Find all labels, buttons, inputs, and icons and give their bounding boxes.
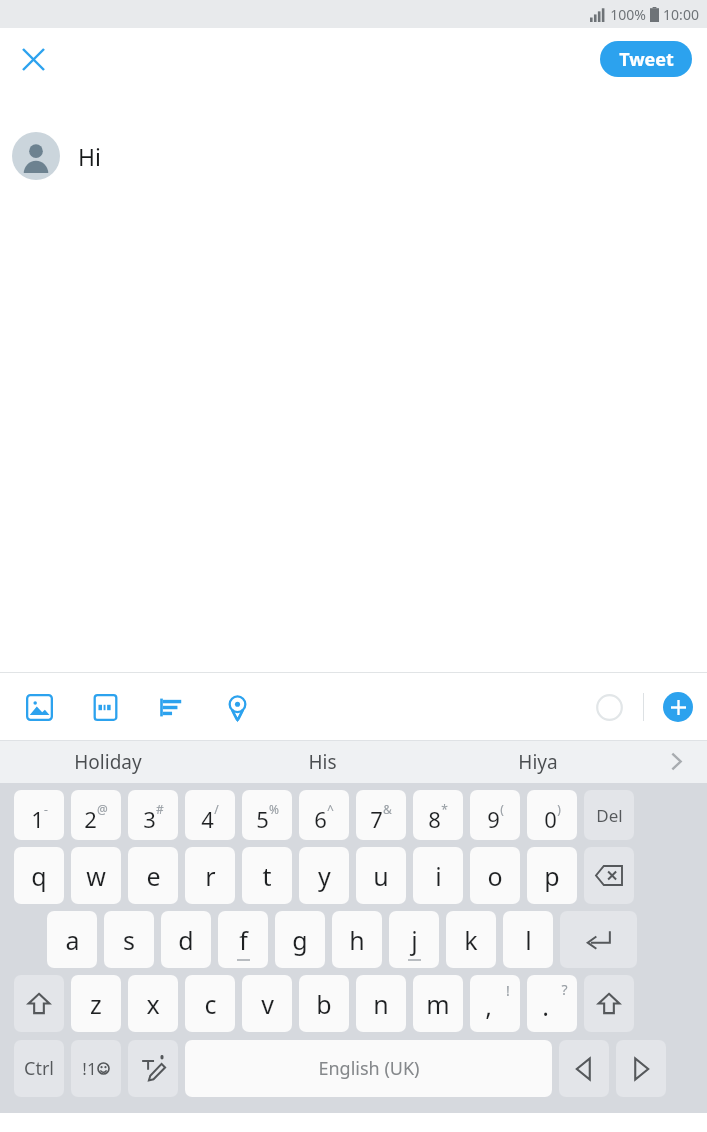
staticText: !1 [82,1057,97,1080]
staticText: e [146,859,161,893]
staticText: & [383,801,392,817]
staticText: r [205,859,216,893]
button[interactable]: t [242,847,292,904]
staticText: Tweet [619,47,674,72]
button[interactable]: Delete [584,790,634,840]
button[interactable]: 8 [413,790,463,840]
button[interactable]: Add GIF [72,679,138,735]
staticText: 5 [256,804,269,834]
staticText: His [308,749,337,775]
button[interactable]: , [470,975,520,1032]
button[interactable]: q [14,847,64,904]
staticText: x [146,987,160,1021]
button[interactable]: p [527,847,577,904]
button[interactable]: g [275,911,325,968]
button[interactable]: 9 [470,790,520,840]
button[interactable]: n [356,975,406,1032]
button[interactable]: Shift [14,975,64,1032]
button[interactable]: Backspace [584,847,634,904]
button[interactable]: Enter [560,911,637,968]
button[interactable]: 5 [242,790,292,840]
button[interactable]: Add tweet [663,692,693,722]
button[interactable]: His [215,740,430,783]
button[interactable]: 7 [356,790,406,840]
staticText: 2 [84,804,97,834]
button[interactable]: 4 [185,790,235,840]
button[interactable]: v [242,975,292,1032]
button[interactable]: 2 [71,790,121,840]
button[interactable]: Hiya [430,740,645,783]
button[interactable]: Close [10,36,56,82]
button[interactable]: i [413,847,463,904]
button[interactable]: Move cursor left [559,1040,609,1097]
button[interactable]: c [185,975,235,1032]
button[interactable]: z [71,975,121,1032]
button[interactable]: j [389,911,439,968]
button[interactable]: b [299,975,349,1032]
staticText: d [178,923,194,957]
staticText: ? [561,980,568,999]
staticText: 9 [487,804,500,834]
staticText: c [204,987,217,1021]
staticText: t [262,859,272,893]
button[interactable]: r [185,847,235,904]
staticText: ( [500,801,504,817]
button[interactable]: Holiday [0,740,215,783]
staticText: 4 [201,804,214,834]
button[interactable]: Add photo [6,679,72,735]
button[interactable]: f [218,911,268,968]
staticText: Del [596,804,623,827]
button[interactable]: d [161,911,211,968]
button[interactable]: 3 [128,790,178,840]
staticText: . [542,989,549,1023]
button[interactable]: s [104,911,154,968]
button[interactable]: 6 [299,790,349,840]
staticText: o [487,859,503,893]
staticText: n [373,987,389,1021]
staticText: f [239,923,248,957]
staticText: y [318,859,331,893]
staticText: k [464,923,478,957]
staticText: h [349,923,365,957]
button[interactable]: m [413,975,463,1032]
button[interactable]: Symbols and emoji [71,1040,121,1097]
staticText: a [65,923,80,957]
button[interactable]: h [332,911,382,968]
button[interactable]: Add location [204,679,270,735]
button[interactable]: o [470,847,520,904]
button[interactable]: Handwriting and voice input [128,1040,178,1097]
button[interactable]: Shift [584,975,634,1032]
button[interactable]: Add poll [138,679,204,735]
staticText: Holiday [74,749,142,775]
staticText: g [292,923,308,957]
button[interactable]: k [446,911,496,968]
button[interactable]: Move cursor right [616,1040,666,1097]
staticText: 7 [370,804,383,834]
staticText: Hiya [518,749,558,775]
staticText: p [544,859,560,893]
button[interactable]: More suggestions [645,740,707,783]
staticText: u [373,859,389,893]
button[interactable]: x [128,975,178,1032]
staticText: ! [506,981,510,1000]
button[interactable]: Control [14,1040,64,1097]
staticText: m [426,987,450,1021]
staticText: s [123,923,135,957]
staticText: * [441,801,448,817]
button[interactable]: 0 [527,790,577,840]
button[interactable]: Tweet [600,41,692,77]
staticText: ^ [327,801,334,817]
staticText: w [86,859,106,893]
button[interactable]: a [47,911,97,968]
staticText: % [269,801,279,817]
button[interactable]: w [71,847,121,904]
button[interactable]: English (UK) [185,1040,552,1097]
button[interactable]: 1 [14,790,64,840]
button[interactable]: y [299,847,349,904]
button[interactable]: e [128,847,178,904]
button[interactable]: u [356,847,406,904]
staticText: 10:00 [663,5,699,24]
button[interactable]: l [503,911,553,968]
staticText: l [525,923,532,957]
button[interactable]: . [527,975,577,1032]
